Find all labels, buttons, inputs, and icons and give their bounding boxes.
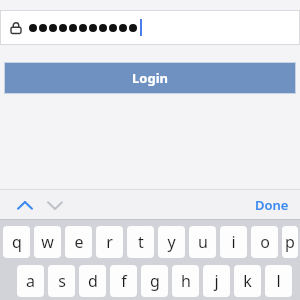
staticText: y [167, 231, 176, 253]
staticText: k [243, 270, 252, 292]
button[interactable]: o [251, 226, 278, 258]
button[interactable]: k [234, 265, 261, 297]
button[interactable]: d [79, 265, 106, 297]
button[interactable]: Next field [42, 192, 68, 218]
button[interactable]: h [172, 265, 199, 297]
button[interactable]: t [127, 226, 154, 258]
staticText: d [88, 270, 98, 292]
button[interactable]: a [17, 265, 44, 297]
button[interactable]: q [3, 226, 30, 258]
staticText: o [260, 231, 270, 253]
staticText: a [26, 270, 35, 292]
staticText: Done [255, 196, 289, 214]
button[interactable]: y [158, 226, 185, 258]
button[interactable]: u [189, 226, 216, 258]
staticText: f [121, 270, 127, 292]
button[interactable]: e [65, 226, 92, 258]
staticText: w [41, 231, 54, 253]
button[interactable]: r [96, 226, 123, 258]
button[interactable]: i [220, 226, 247, 258]
button[interactable]: f [110, 265, 137, 297]
staticText: r [106, 231, 113, 253]
staticText: j [214, 270, 219, 292]
button[interactable]: l [265, 265, 292, 297]
staticText: i [231, 231, 236, 253]
staticText: q [12, 231, 22, 253]
staticText: g [150, 270, 160, 292]
staticText: u [198, 231, 208, 253]
button[interactable]: w [34, 226, 61, 258]
button[interactable]: Done [255, 196, 289, 214]
staticText: s [58, 270, 66, 292]
staticText: Login [132, 69, 168, 87]
button[interactable]: s [48, 265, 75, 297]
button[interactable]: Previous field [12, 192, 38, 218]
staticText: t [138, 231, 144, 253]
staticText: p [285, 231, 295, 253]
staticText: h [181, 270, 191, 292]
button[interactable]: p [282, 226, 298, 258]
button[interactable]: Login [4, 62, 296, 94]
staticText: e [74, 231, 84, 253]
button[interactable] [0, 10, 300, 45]
button[interactable]: j [203, 265, 230, 297]
staticText: l [276, 270, 281, 292]
button[interactable]: g [141, 265, 168, 297]
